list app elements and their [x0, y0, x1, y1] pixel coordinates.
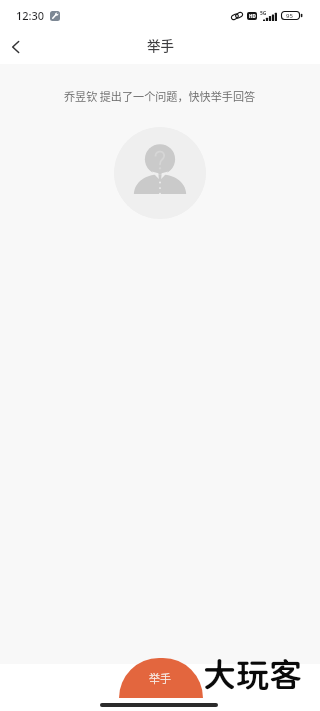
staticText: 举手	[149, 670, 171, 686]
staticText: 大玩客	[203, 655, 302, 694]
staticText: 12:30	[16, 8, 45, 23]
staticText: 举手	[147, 35, 174, 55]
staticText: 乔昱钦 提出了一个问题，快快举手回答	[64, 88, 256, 104]
staticText: HD	[249, 13, 256, 19]
staticText: 95	[286, 12, 293, 20]
button[interactable]: Back	[0, 30, 30, 64]
staticText: 5G	[260, 10, 267, 17]
button[interactable]: 举手	[119, 658, 203, 698]
